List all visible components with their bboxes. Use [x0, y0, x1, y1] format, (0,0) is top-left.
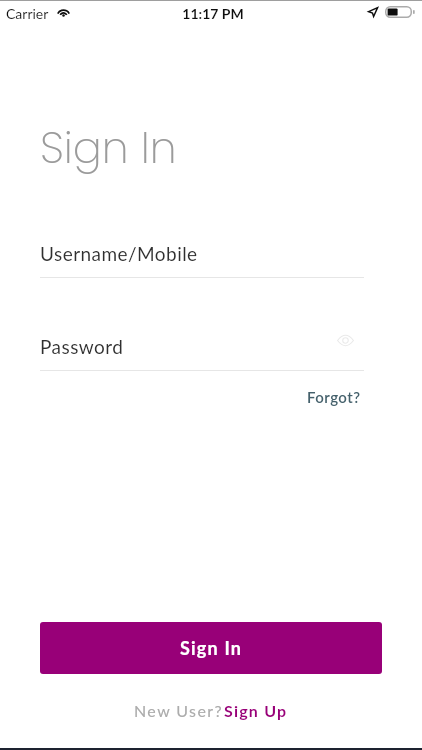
- button[interactable]: Show password: [329, 324, 361, 356]
- staticText: 11:17 PM: [2, 5, 422, 22]
- staticText: Password: [40, 335, 124, 358]
- staticText: Sign Up: [224, 701, 288, 720]
- button[interactable]: Sign Up: [224, 701, 288, 720]
- staticText: Sign In: [40, 118, 177, 178]
- button[interactable]: Forgot?: [307, 388, 361, 406]
- staticText: Username/Mobile: [40, 242, 198, 265]
- staticText: New User?: [134, 701, 224, 720]
- staticText: Sign In: [180, 637, 243, 659]
- button[interactable]: Sign In: [40, 622, 382, 674]
- staticText: Carrier: [6, 5, 49, 22]
- staticText: Forgot?: [307, 388, 361, 406]
